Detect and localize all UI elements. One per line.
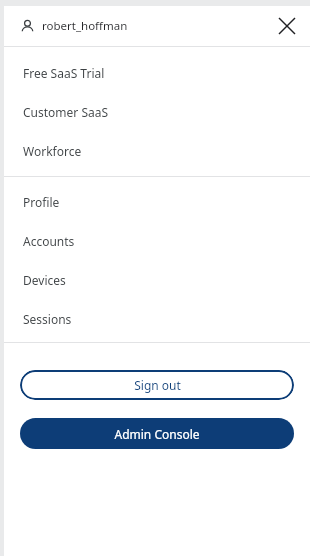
button[interactable]: Workforce [4, 131, 310, 170]
button[interactable]: Customer SaaS [4, 92, 310, 131]
staticText: Profile [23, 194, 60, 210]
button[interactable]: Admin Console [20, 418, 294, 449]
button[interactable]: Sign out [20, 370, 294, 400]
staticText: robert_hoffman [42, 18, 128, 34]
button[interactable]: Devices [4, 260, 310, 299]
button[interactable]: Profile [4, 182, 310, 221]
staticText: Accounts [23, 233, 75, 249]
button[interactable]: Free SaaS Trial [4, 53, 310, 92]
staticText: Free SaaS Trial [23, 65, 105, 81]
staticText: Customer SaaS [23, 104, 109, 120]
staticText: Workforce [23, 143, 82, 159]
staticText: Sign out [134, 377, 181, 393]
staticText: Devices [23, 272, 66, 288]
button[interactable]: Accounts [4, 221, 310, 260]
staticText: Sessions [23, 311, 72, 327]
staticText: Admin Console [114, 426, 200, 442]
button[interactable]: robert_hoffman [4, 12, 136, 40]
button[interactable]: Close [272, 11, 302, 41]
button[interactable]: Sessions [4, 299, 310, 338]
